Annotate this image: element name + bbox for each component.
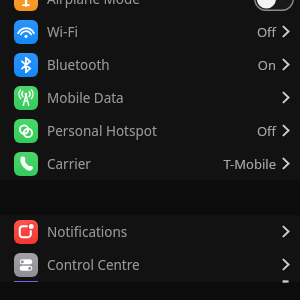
button[interactable]: Personal Hotspot: [0, 114, 300, 147]
staticText: Off: [256, 23, 276, 41]
staticText: Personal Hotspot: [47, 122, 256, 140]
button[interactable]: Do Not Disturb: [0, 281, 300, 282]
staticText: Mobile Data: [47, 89, 282, 107]
staticText: Notifications: [47, 223, 282, 241]
button[interactable]: Carrier: [0, 147, 300, 180]
button[interactable]: Bluetooth: [0, 48, 300, 81]
staticText: Bluetooth: [47, 56, 257, 74]
button[interactable]: Mobile Data: [0, 81, 300, 114]
staticText: Carrier: [47, 155, 223, 173]
button[interactable]: Airplane Mode toggle, off: [254, 0, 294, 11]
button[interactable]: Wi-Fi: [0, 15, 300, 48]
staticText: Control Centre: [47, 256, 282, 274]
button[interactable]: Notifications: [0, 215, 300, 248]
staticText: Airplane Mode: [47, 0, 254, 8]
staticText: Off: [256, 122, 276, 140]
staticText: T-Mobile: [223, 155, 276, 173]
staticText: On: [257, 56, 276, 74]
button[interactable]: Control Centre: [0, 248, 300, 281]
staticText: Wi-Fi: [47, 23, 256, 41]
button[interactable]: Airplane Mode: [0, 0, 300, 15]
